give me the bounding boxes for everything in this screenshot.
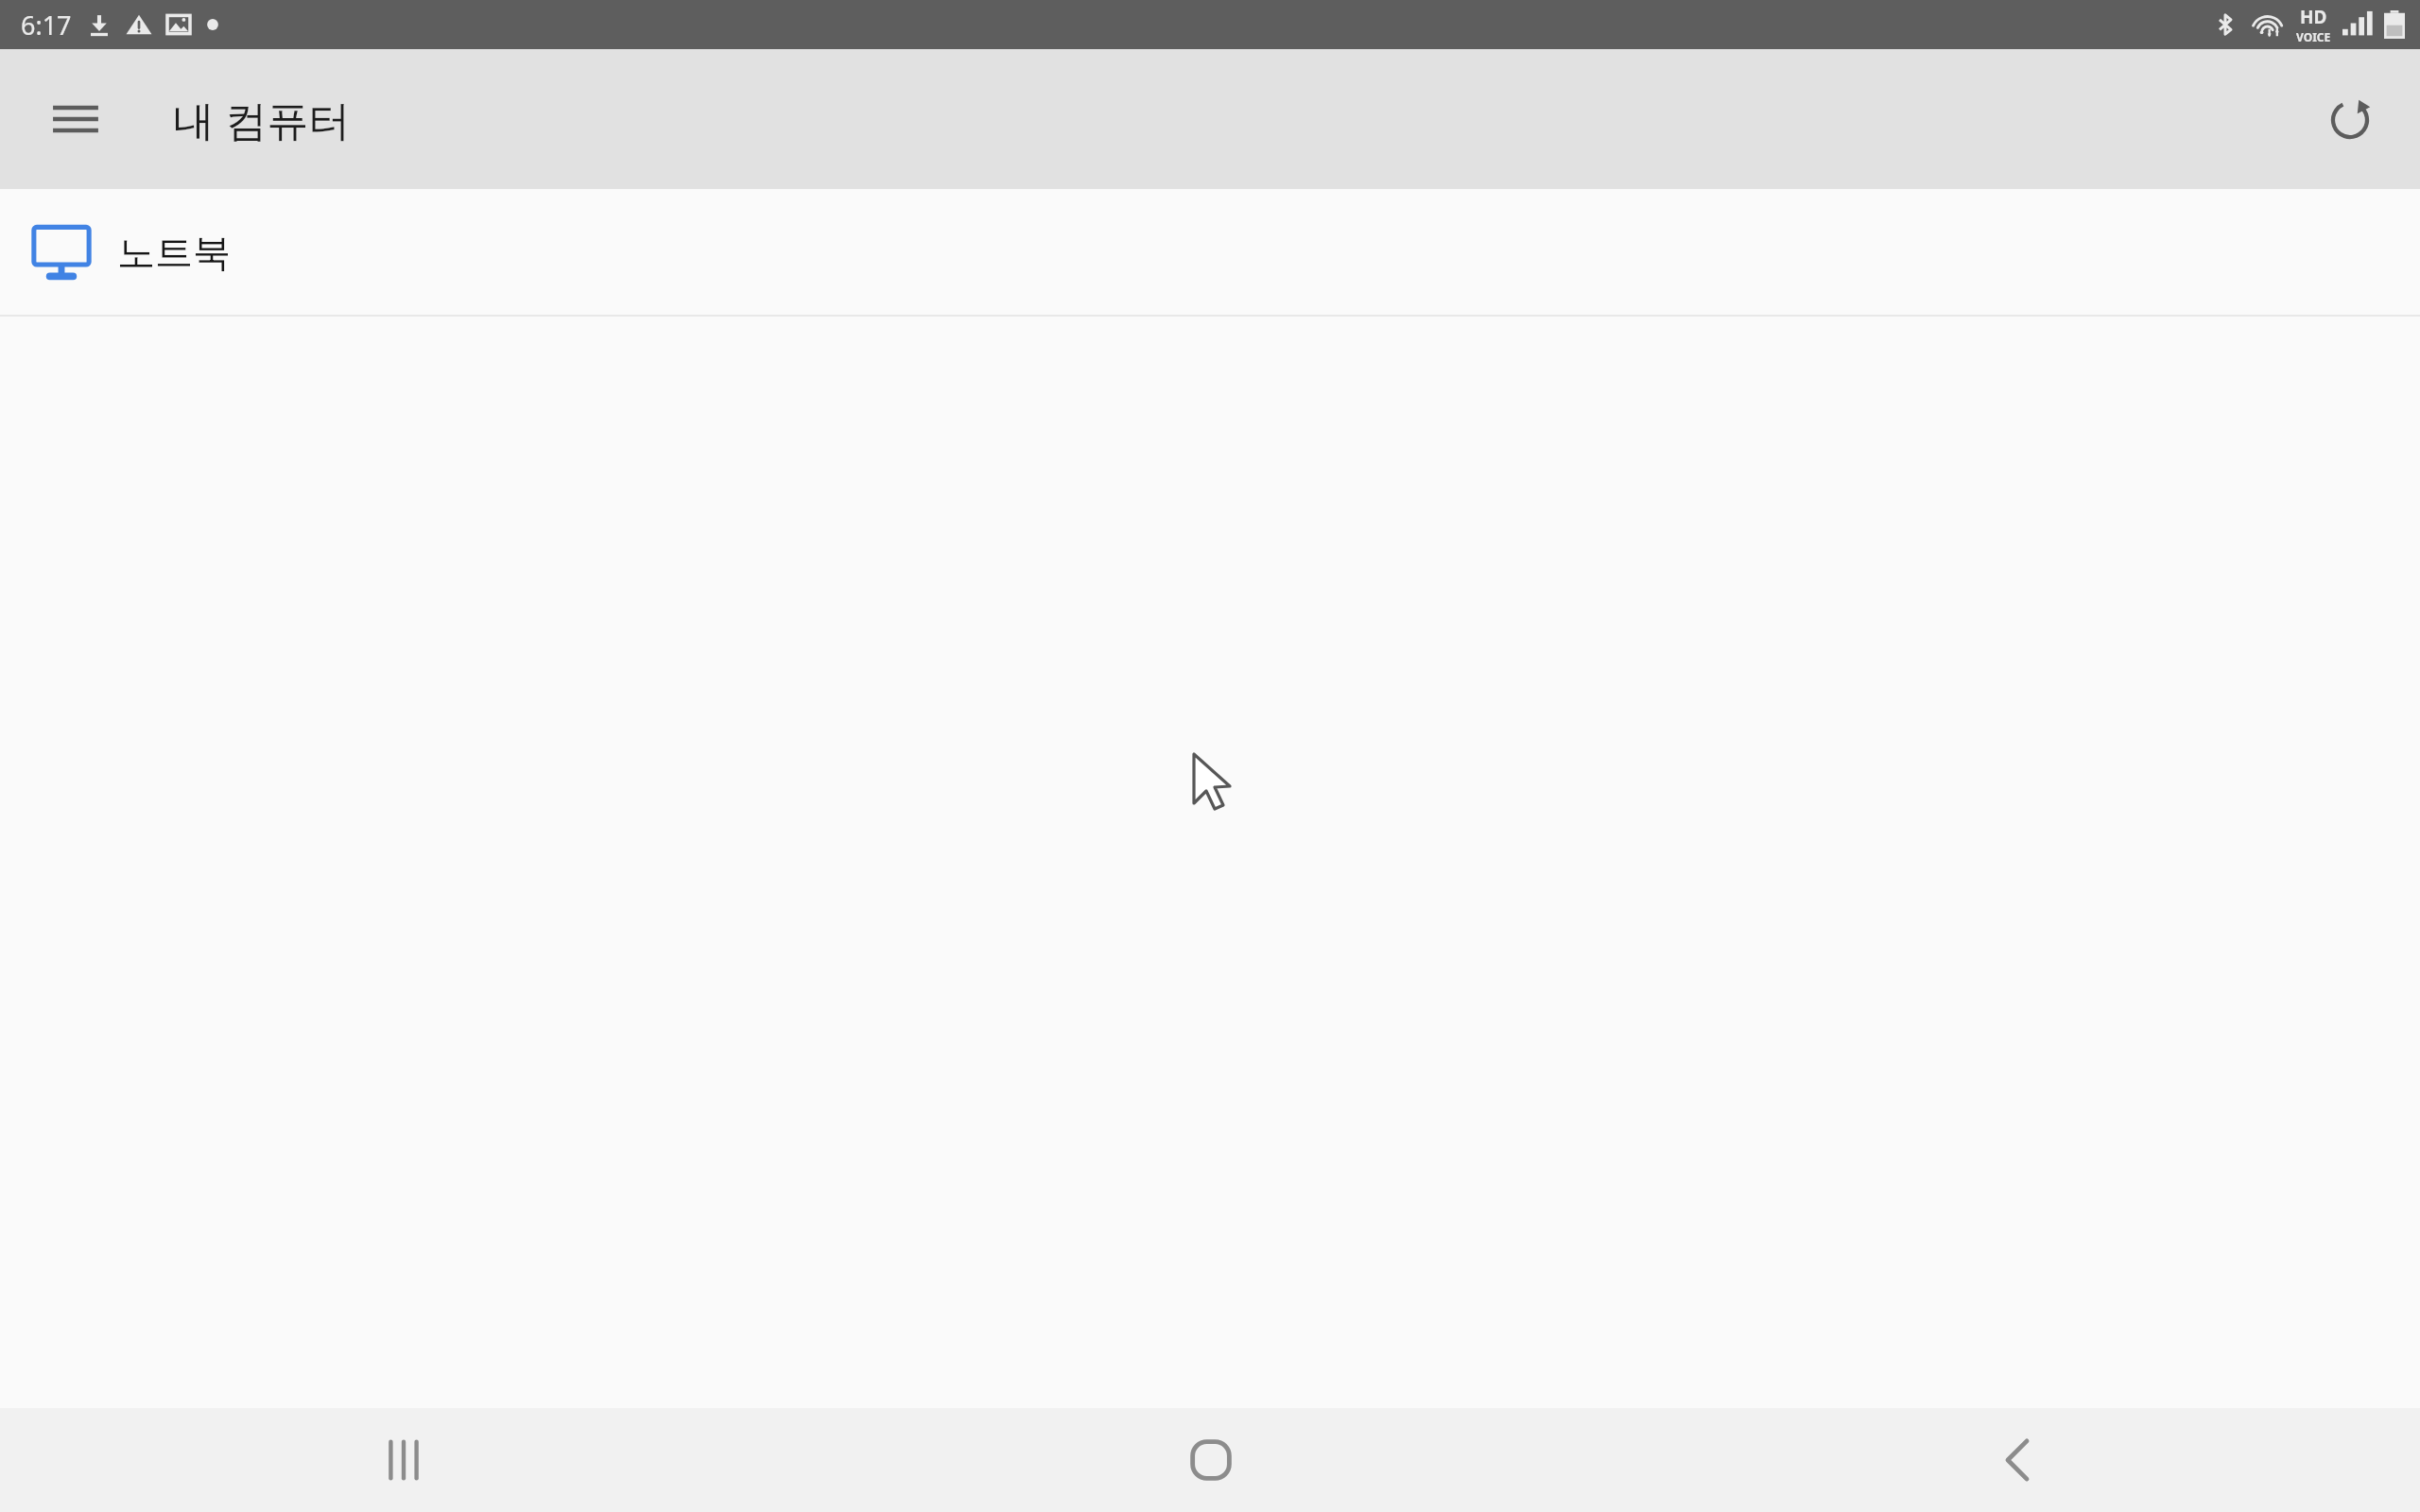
button[interactable]: Refresh [2310,79,2390,159]
staticText: 6:17 [21,8,72,43]
button[interactable]: Back [1614,1408,2420,1512]
button[interactable]: Home [807,1408,1614,1512]
button[interactable]: Open navigation drawer [36,79,115,159]
staticText: VOICE [2296,29,2331,44]
button[interactable]: Recent apps [0,1408,807,1512]
staticText: 노트북 [117,229,231,276]
staticText: 내 컴퓨터 [173,91,351,147]
staticText: HD [2300,5,2327,29]
button[interactable]: 노트북 [0,189,2420,315]
